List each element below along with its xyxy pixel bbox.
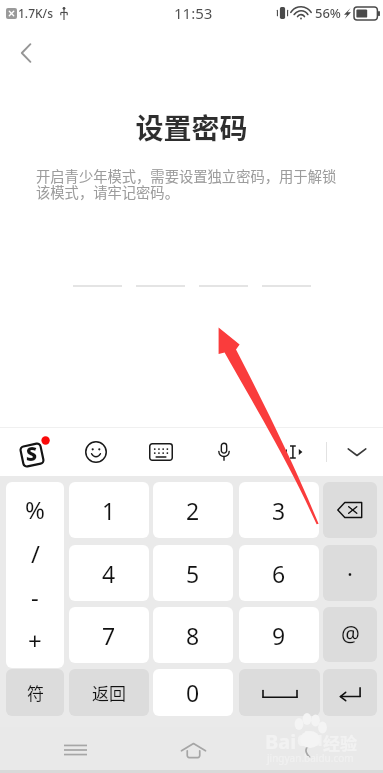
- button[interactable]: Home: [163, 727, 223, 773]
- staticText: %: [25, 493, 45, 526]
- button[interactable]: 5: [153, 545, 233, 601]
- staticText: 56%: [315, 4, 341, 22]
- button[interactable]: Back: [4, 31, 48, 75]
- staticText: 9: [272, 620, 286, 651]
- staticText: -: [31, 580, 39, 613]
- button[interactable]: ·: [323, 545, 377, 601]
- staticText: 符: [27, 680, 44, 705]
- button[interactable]: 4: [69, 545, 149, 601]
- button[interactable]: @: [323, 607, 377, 662]
- button[interactable]: [323, 669, 377, 716]
- button[interactable]: Recent apps: [45, 727, 105, 773]
- staticText: 7: [102, 620, 116, 651]
- staticText: S: [26, 441, 37, 467]
- staticText: 3: [272, 495, 286, 526]
- staticText: 经验: [323, 730, 357, 755]
- staticText: du: [297, 725, 323, 752]
- button[interactable]: Emoji: [72, 428, 120, 476]
- button[interactable]: 7: [69, 607, 149, 663]
- button[interactable]: [239, 669, 320, 716]
- staticText: 6: [272, 558, 286, 589]
- staticText: jingyan.baidu.com: [267, 751, 354, 765]
- staticText: Bai: [265, 728, 297, 755]
- button[interactable]: %: [6, 482, 64, 668]
- staticText: 2: [186, 495, 200, 526]
- staticText: 11:53: [174, 3, 213, 23]
- button[interactable]: 0: [153, 669, 233, 716]
- button[interactable]: Text cursor: [270, 428, 318, 476]
- staticText: 4: [102, 558, 116, 589]
- staticText: 返回: [92, 680, 126, 705]
- staticText: 1: [102, 495, 116, 526]
- staticText: 开启青少年模式，需要设置独立密码，用于解锁该模式，请牢记密码。: [36, 165, 348, 202]
- button[interactable]: 3: [239, 482, 319, 538]
- button[interactable]: 8: [153, 607, 233, 663]
- button[interactable]: 9: [239, 607, 319, 663]
- button[interactable]: [323, 482, 377, 538]
- staticText: 8: [186, 620, 200, 651]
- button[interactable]: Hide keyboard: [333, 428, 381, 476]
- button[interactable]: Sogou input method: [9, 428, 57, 476]
- staticText: 1.7K/s: [18, 5, 54, 21]
- button[interactable]: 返回: [69, 669, 149, 716]
- button[interactable]: 6: [239, 545, 319, 601]
- staticText: +: [28, 624, 42, 657]
- button[interactable]: 1: [69, 482, 149, 538]
- staticText: ·: [347, 558, 353, 588]
- staticText: 0: [186, 677, 200, 708]
- button[interactable]: 符: [6, 669, 64, 716]
- button[interactable]: 2: [153, 482, 233, 538]
- button[interactable]: Voice input: [200, 428, 248, 476]
- button[interactable]: Back: [281, 727, 341, 773]
- staticText: /: [31, 537, 40, 570]
- staticText: 设置密码: [0, 107, 383, 148]
- staticText: @: [341, 620, 360, 649]
- staticText: 5: [186, 558, 200, 589]
- button[interactable]: Keyboard layout: [137, 428, 185, 476]
